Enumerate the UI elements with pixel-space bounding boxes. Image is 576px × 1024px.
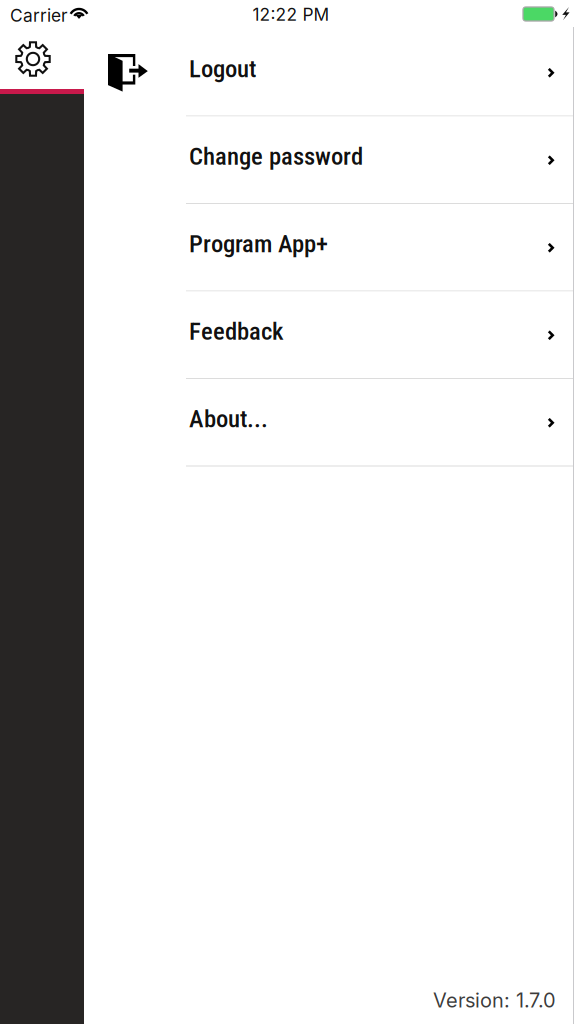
staticText: Carrier (10, 5, 68, 26)
staticText: About... (189, 404, 268, 433)
staticText: Logout (189, 54, 256, 83)
button[interactable]: Program App+ (186, 204, 573, 290)
button[interactable]: Feedback (186, 291, 573, 378)
button[interactable]: Logout (186, 29, 573, 115)
staticText: 12:22 PM (252, 4, 329, 25)
staticText: Change password (189, 142, 363, 171)
button[interactable]: About... (186, 379, 573, 465)
staticText: Feedback (189, 317, 283, 346)
staticText: Version: 1.7.0 (433, 988, 556, 1012)
button[interactable]: Change password (186, 116, 573, 203)
button[interactable]: Settings (0, 29, 66, 89)
staticText: Program App+ (189, 229, 328, 258)
